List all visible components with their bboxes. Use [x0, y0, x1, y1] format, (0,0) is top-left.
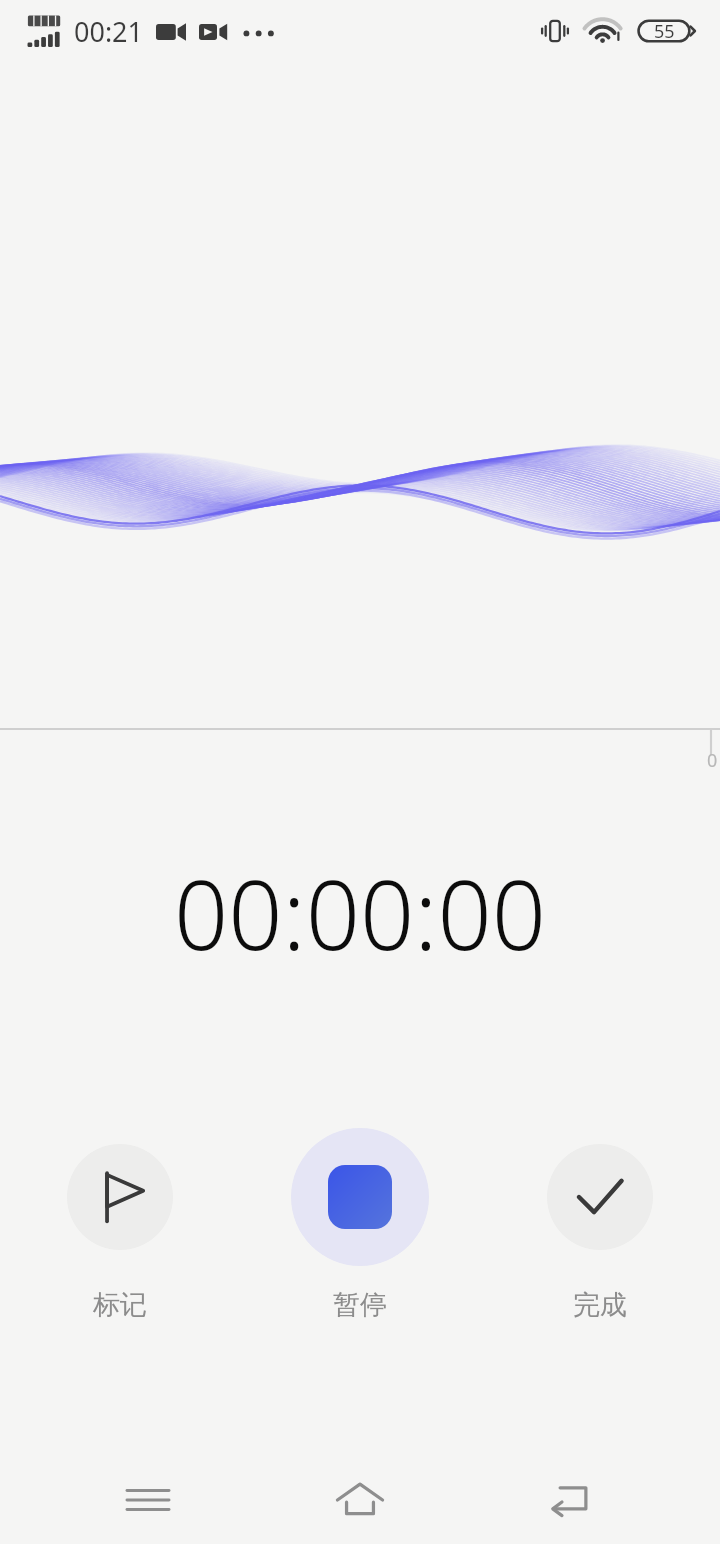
staticText: 暂停 [333, 1288, 387, 1322]
button[interactable]: 暂停 [285, 1128, 435, 1322]
staticText: 标记 [93, 1288, 147, 1322]
staticText: 0 [707, 748, 718, 773]
staticText: 完成 [573, 1288, 627, 1322]
button[interactable]: Back [508, 1456, 638, 1544]
button[interactable]: Recents [83, 1456, 213, 1544]
staticText: 00:00:00 [0, 848, 720, 977]
staticText: 55 [654, 19, 675, 44]
staticText: 00:21 [74, 13, 144, 50]
button[interactable]: 完成 [525, 1128, 675, 1322]
button[interactable]: 标记 [45, 1128, 195, 1322]
button[interactable]: Home [295, 1456, 425, 1544]
